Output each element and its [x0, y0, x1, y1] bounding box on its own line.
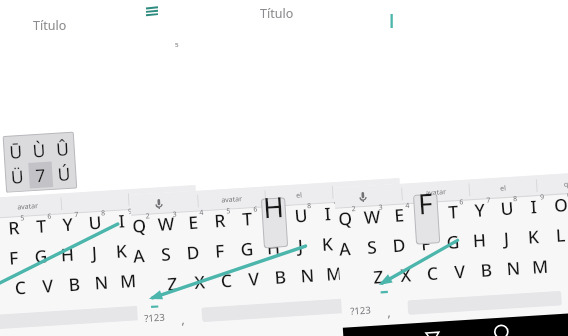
button[interactable]: Gesture typing keyboard screenshots	[0, 0, 568, 336]
